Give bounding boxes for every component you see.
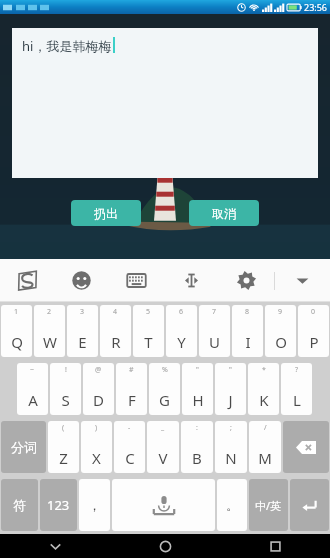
staticText: 取消 bbox=[212, 206, 236, 221]
staticText: " bbox=[196, 365, 199, 375]
staticText: 9 bbox=[278, 307, 283, 317]
staticText: R bbox=[111, 332, 121, 352]
button[interactable]: ) bbox=[81, 421, 112, 473]
staticText: * bbox=[262, 365, 266, 375]
staticText: Y bbox=[177, 332, 186, 352]
button[interactable]: 8 bbox=[232, 305, 263, 357]
staticText: W bbox=[43, 332, 57, 352]
staticText: Z bbox=[59, 448, 68, 468]
button[interactable]: # bbox=[116, 363, 147, 415]
button[interactable]: ; bbox=[215, 421, 247, 473]
button[interactable]: 分词 bbox=[1, 421, 46, 473]
staticText: _ bbox=[161, 423, 165, 433]
staticText: @ bbox=[95, 365, 102, 375]
staticText: T bbox=[144, 332, 153, 352]
button[interactable]: 2 bbox=[34, 305, 65, 357]
staticText: 8 bbox=[245, 307, 250, 317]
button[interactable]: 5 bbox=[133, 305, 164, 357]
staticText: 中/英 bbox=[255, 498, 282, 513]
button[interactable]: 3 bbox=[67, 305, 98, 357]
button[interactable]: " bbox=[215, 363, 246, 415]
button[interactable]: ? bbox=[281, 363, 312, 415]
button[interactable]: 符 bbox=[1, 479, 38, 531]
staticText: 3 bbox=[80, 307, 85, 317]
button[interactable]: 取消 bbox=[189, 200, 259, 226]
button[interactable]: @ bbox=[83, 363, 114, 415]
staticText: 符 bbox=[13, 497, 26, 513]
staticText: L bbox=[293, 390, 301, 410]
button[interactable]: _ bbox=[147, 421, 179, 473]
staticText: 。 bbox=[226, 497, 239, 513]
staticText: ; bbox=[230, 423, 232, 433]
button[interactable]: Emoji bbox=[54, 259, 109, 302]
button[interactable]: / bbox=[249, 421, 281, 473]
staticText: - bbox=[128, 423, 131, 433]
staticText: I bbox=[245, 332, 251, 352]
button[interactable]: ~ bbox=[17, 363, 48, 415]
button[interactable]: Settings bbox=[219, 259, 274, 302]
staticText: K bbox=[259, 390, 269, 410]
button[interactable]: 1 bbox=[1, 305, 32, 357]
staticText: 5 bbox=[146, 307, 151, 317]
button[interactable]: " bbox=[182, 363, 213, 415]
staticText: # bbox=[129, 365, 134, 375]
button[interactable]: hi，我是韩梅梅 bbox=[12, 28, 318, 178]
button[interactable]: 扔出 bbox=[71, 200, 141, 226]
button[interactable]: % bbox=[149, 363, 180, 415]
button[interactable]: 6 bbox=[166, 305, 197, 357]
staticText: G bbox=[159, 390, 170, 410]
staticText: % bbox=[162, 365, 168, 375]
staticText: " bbox=[229, 365, 232, 375]
staticText: E bbox=[78, 332, 87, 352]
staticText: U bbox=[209, 332, 220, 352]
staticText: 4 bbox=[113, 307, 118, 317]
button[interactable]: Space, voice input bbox=[112, 479, 215, 531]
staticText: M bbox=[258, 448, 272, 468]
button[interactable]: Move cursor bbox=[164, 259, 219, 302]
staticText: ， bbox=[88, 497, 101, 513]
staticText: 123 bbox=[47, 496, 70, 514]
staticText: P bbox=[309, 332, 319, 352]
staticText: 7 bbox=[212, 307, 217, 317]
staticText: ~ bbox=[30, 365, 35, 375]
button[interactable]: : bbox=[181, 421, 213, 473]
staticText: N bbox=[225, 448, 237, 468]
staticText: O bbox=[275, 332, 287, 352]
button[interactable]: 0 bbox=[298, 305, 329, 357]
button[interactable]: * bbox=[248, 363, 279, 415]
button[interactable]: Recent apps bbox=[220, 534, 330, 558]
staticText: A bbox=[28, 390, 38, 410]
button[interactable]: Back bbox=[0, 534, 110, 558]
button[interactable]: ， bbox=[79, 479, 110, 531]
button[interactable]: 9 bbox=[265, 305, 296, 357]
staticText: 2 bbox=[47, 307, 52, 317]
button[interactable]: Hide keyboard bbox=[275, 259, 330, 302]
button[interactable]: Keyboard layout bbox=[109, 259, 164, 302]
button[interactable]: Home bbox=[110, 534, 220, 558]
staticText: 1 bbox=[14, 307, 19, 317]
staticText: : bbox=[196, 423, 198, 433]
button[interactable]: 4 bbox=[100, 305, 131, 357]
button[interactable]: Sogou input method bbox=[0, 259, 54, 302]
staticText: ) bbox=[95, 423, 98, 433]
staticText: 分词 bbox=[11, 439, 37, 455]
staticText: Q bbox=[11, 332, 23, 352]
staticText: 扔出 bbox=[94, 206, 118, 221]
staticText: X bbox=[92, 448, 101, 468]
button[interactable]: 中/英 bbox=[249, 479, 288, 531]
staticText: V bbox=[158, 448, 168, 468]
button[interactable]: ( bbox=[48, 421, 79, 473]
staticText: ? bbox=[295, 365, 299, 375]
button[interactable]: - bbox=[114, 421, 145, 473]
staticText: ! bbox=[65, 365, 67, 375]
button[interactable]: Enter bbox=[290, 479, 329, 531]
staticText: hi，我是韩梅梅 bbox=[22, 37, 112, 55]
button[interactable]: 。 bbox=[217, 479, 247, 531]
button[interactable]: Backspace bbox=[283, 421, 329, 473]
staticText: / bbox=[264, 423, 267, 433]
button[interactable]: ! bbox=[50, 363, 81, 415]
staticText: H bbox=[192, 390, 204, 410]
staticText: D bbox=[93, 390, 104, 410]
button[interactable]: 7 bbox=[199, 305, 230, 357]
button[interactable]: 123 bbox=[40, 479, 77, 531]
